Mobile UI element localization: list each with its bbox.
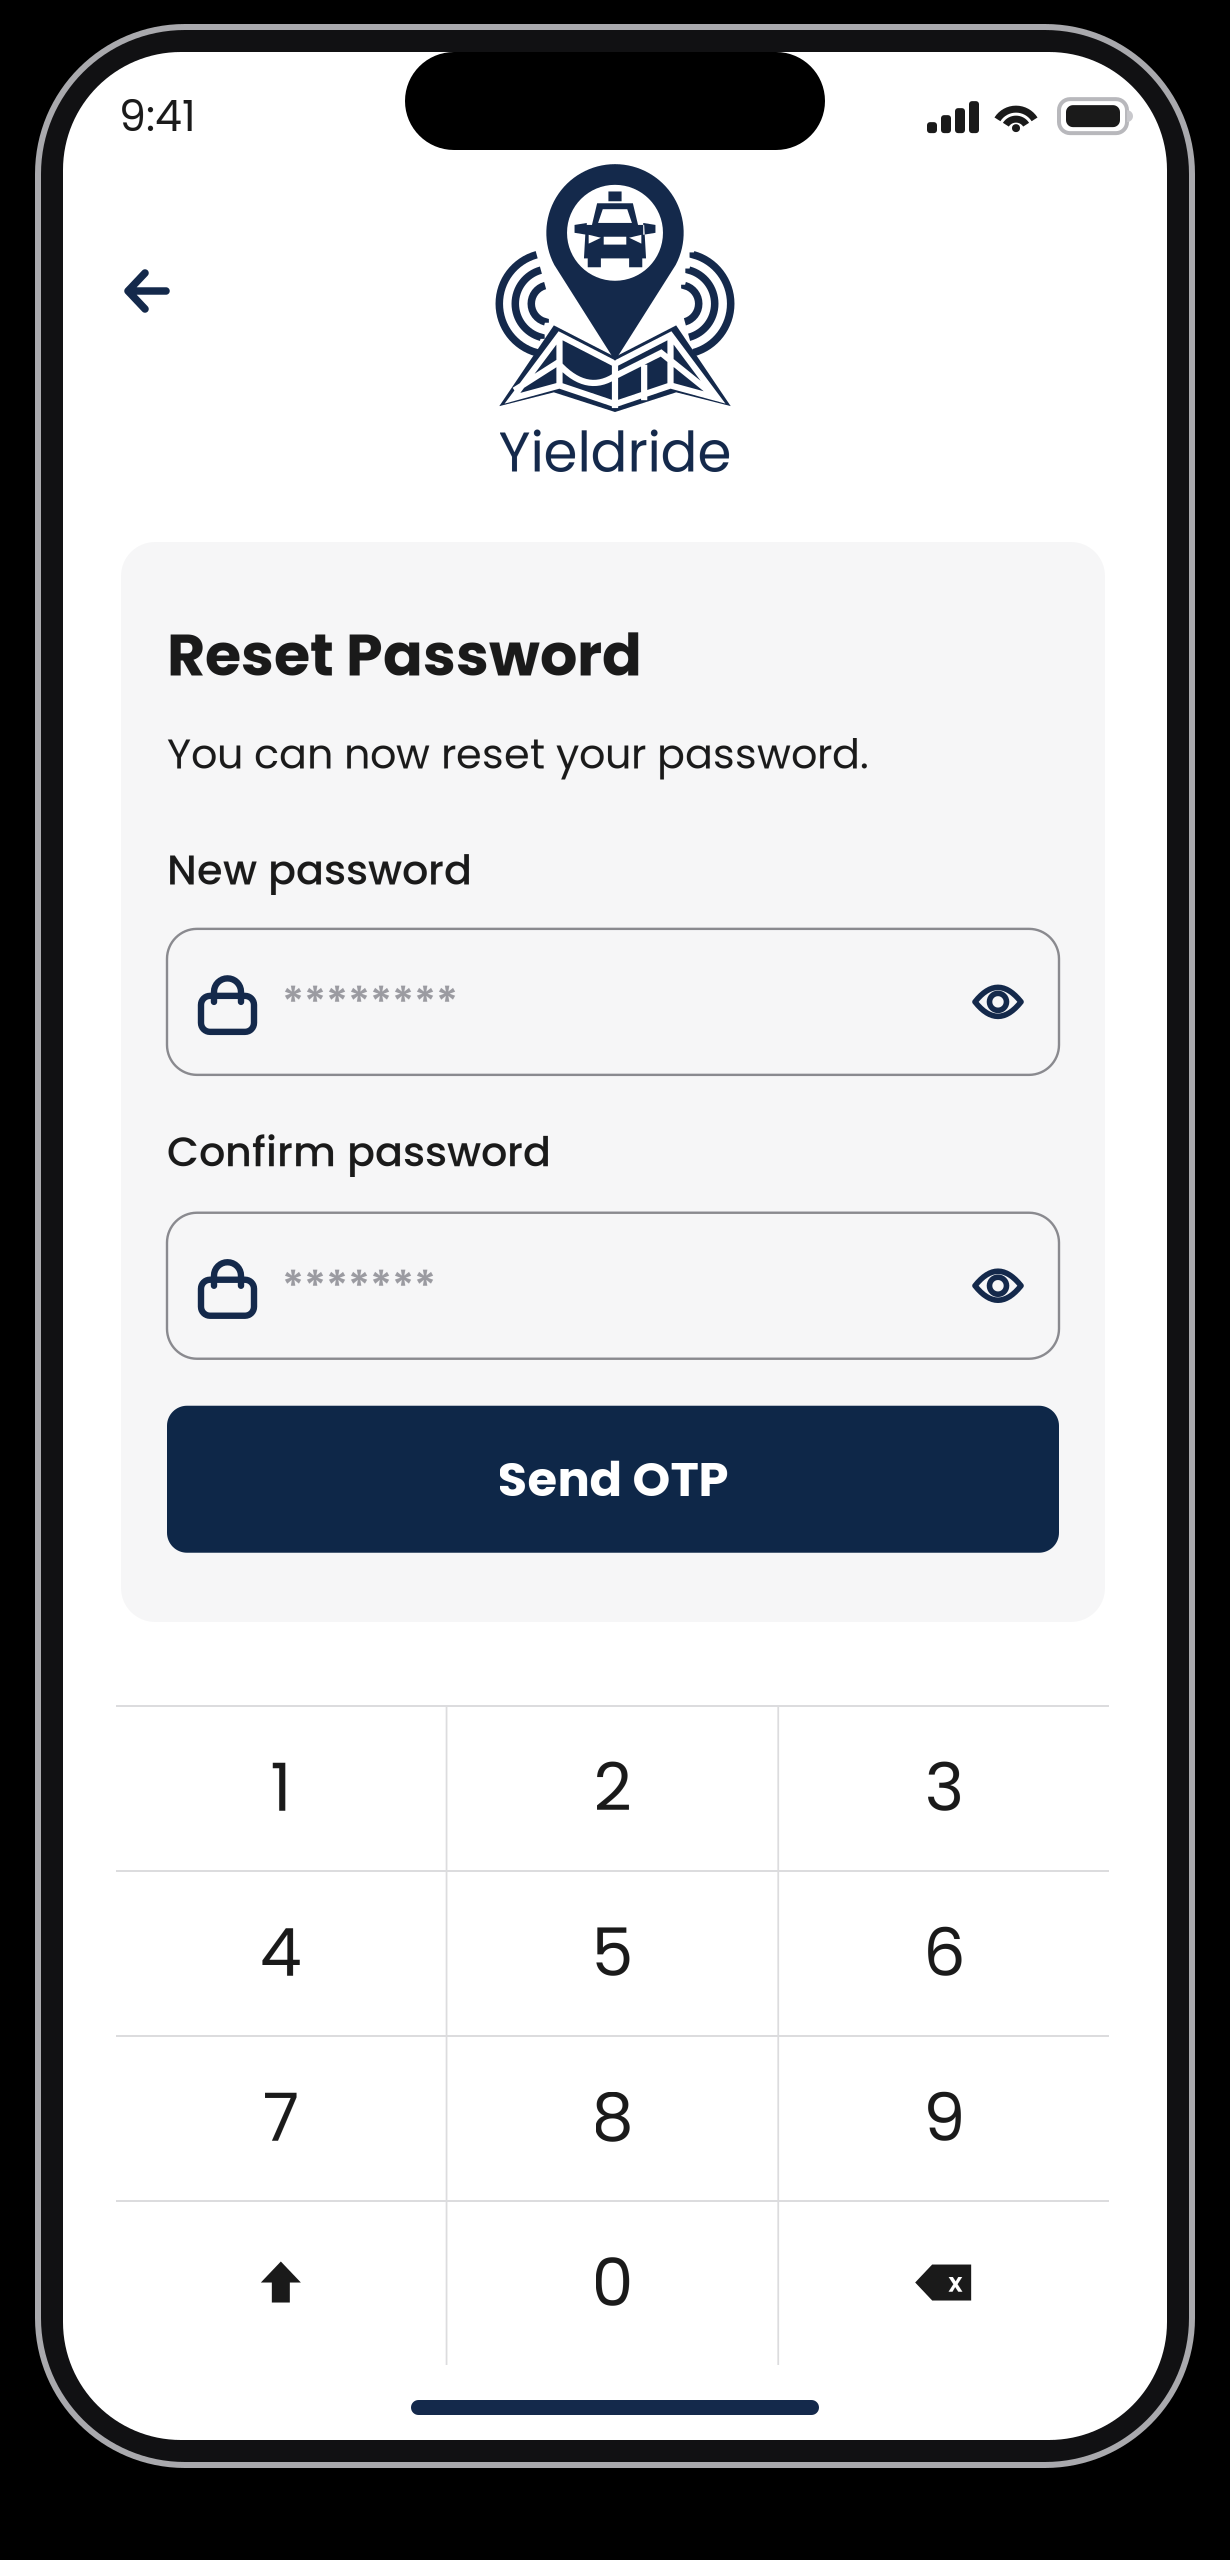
button[interactable]: Send OTP <box>167 1406 1059 1553</box>
staticText: 3 <box>925 1741 964 1834</box>
button[interactable]: 1 <box>116 1705 446 1870</box>
staticText: 9 <box>923 2071 965 2164</box>
staticText: Reset Password <box>167 614 642 696</box>
staticText: 0 <box>591 2236 633 2329</box>
button[interactable] <box>116 2200 446 2365</box>
button[interactable]: Show password <box>951 929 1059 1075</box>
button[interactable]: 3 <box>779 1705 1109 1870</box>
staticText: 2 <box>593 1741 631 1834</box>
staticText: 4 <box>260 1906 302 1999</box>
staticText: 5 <box>591 1906 633 1999</box>
staticText: Confirm password <box>167 1123 551 1181</box>
staticText: 7 <box>263 2071 299 2164</box>
button[interactable]: 2 <box>448 1705 777 1870</box>
button[interactable]: 4 <box>116 1870 446 2035</box>
button[interactable]: x <box>779 2200 1109 2365</box>
button[interactable]: 9 <box>779 2035 1109 2200</box>
staticText: x <box>948 2264 962 2301</box>
staticText: 1 <box>270 1741 291 1834</box>
button[interactable]: 8 <box>448 2035 777 2200</box>
staticText: ******* <box>282 1256 436 1316</box>
staticText: You can now reset your password. <box>167 725 869 783</box>
staticText: New password <box>167 841 472 899</box>
button[interactable]: 5 <box>448 1870 777 2035</box>
button[interactable]: 6 <box>779 1870 1109 2035</box>
staticText: ******** <box>282 972 458 1032</box>
staticText: Send OTP <box>497 1446 728 1513</box>
staticText: 6 <box>923 1906 965 1999</box>
staticText: 8 <box>591 2071 633 2164</box>
button[interactable]: Back <box>63 146 201 344</box>
staticText: Yieldride <box>498 414 731 490</box>
staticText: 9:41 <box>119 86 196 146</box>
button[interactable]: Show password <box>951 1213 1059 1359</box>
button[interactable]: 0 <box>448 2200 777 2365</box>
button[interactable]: 7 <box>116 2035 446 2200</box>
